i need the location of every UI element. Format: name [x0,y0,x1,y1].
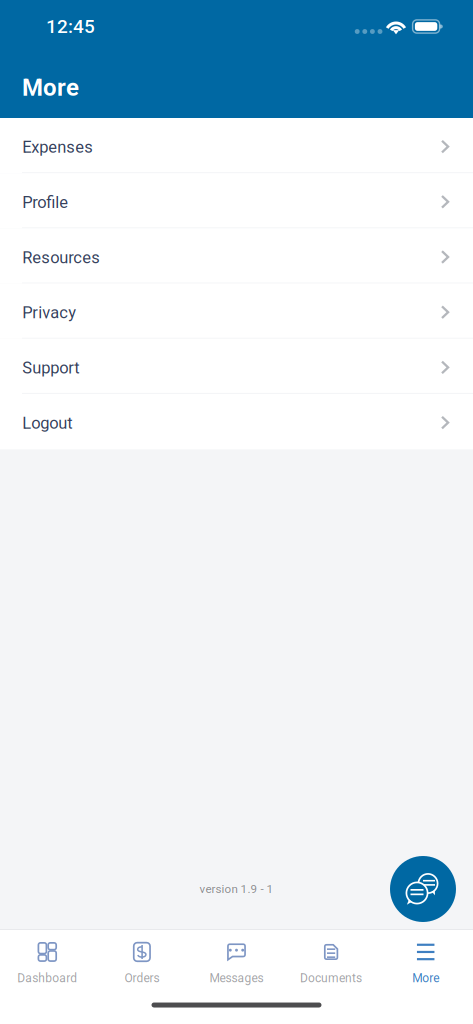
button[interactable]: Logout [0,394,473,449]
button[interactable]: Documents [284,930,378,992]
button[interactable]: More [378,930,473,992]
staticText: version 1.9 - 1 [199,882,273,896]
button[interactable]: Resources [0,228,473,284]
staticText: Profile [22,193,68,212]
staticText: Documents [300,971,362,985]
staticText: 12:45 [46,15,95,38]
button[interactable]: Dashboard [0,930,95,992]
staticText: Logout [22,413,72,433]
staticText: Support [22,358,79,377]
staticText: Messages [209,971,263,985]
button[interactable]: Chat [390,856,456,922]
staticText: More [412,971,439,985]
staticText: Privacy [22,303,76,322]
button[interactable]: Expenses [0,118,473,173]
button[interactable]: Orders [95,930,189,992]
staticText: Dashboard [17,971,77,985]
staticText: Resources [22,248,100,267]
staticText: Expenses [22,137,93,157]
button[interactable]: Support [0,339,473,394]
staticText: More [22,73,79,101]
button[interactable]: Privacy [0,284,473,339]
button[interactable]: Messages [189,930,284,992]
button[interactable]: Profile [0,173,473,228]
staticText: Orders [124,971,159,985]
